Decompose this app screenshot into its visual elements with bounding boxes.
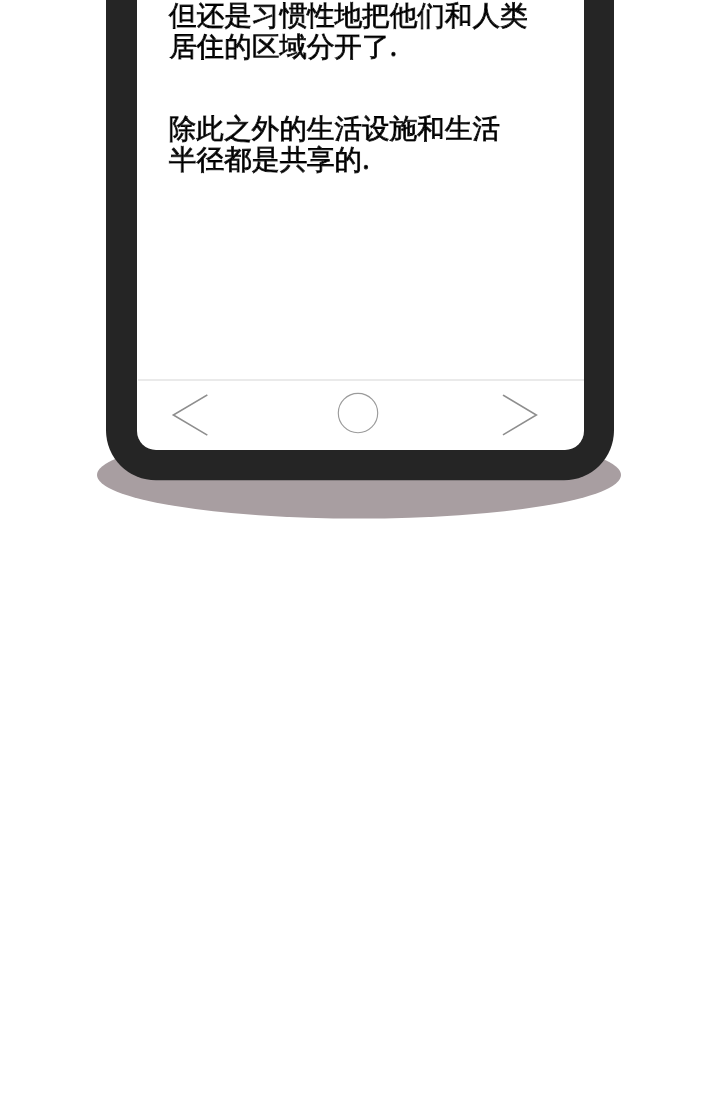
button[interactable]: Forward [489,384,551,446]
staticText: 除此之外的生活设施和生活 半径都是共享的. [169,111,501,178]
staticText: 但还是习惯性地把他们和人类 居住的区域分开了. [169,0,528,65]
staticText: 但还是习惯性地把他们和人类 居住的区域分开了. [169,0,528,65]
button[interactable]: Back [159,384,221,446]
staticText: 除此之外的生活设施和生活 半径都是共享的. [169,111,501,178]
button[interactable]: Home [327,382,389,444]
